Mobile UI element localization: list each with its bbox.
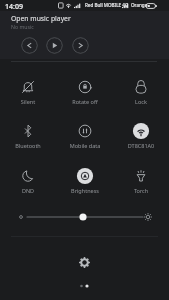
staticText: Orange xyxy=(131,2,148,8)
button[interactable]: Play xyxy=(46,37,63,54)
staticText: DT8C81A0 xyxy=(113,142,169,149)
staticText: Lock xyxy=(113,98,169,105)
staticText: Rotate off xyxy=(57,98,113,105)
staticText: Open music player xyxy=(11,14,71,23)
button[interactable]: Previous xyxy=(21,37,38,54)
staticText: No music xyxy=(11,23,34,30)
button[interactable]: Rotate off xyxy=(57,76,113,105)
staticText: DND xyxy=(0,187,56,194)
button[interactable]: Settings xyxy=(79,257,90,268)
staticText: Brightness xyxy=(57,187,113,194)
button[interactable]: Lock xyxy=(113,76,169,105)
button[interactable]: DND xyxy=(0,165,56,194)
button[interactable]: Mobile data xyxy=(57,120,113,149)
button[interactable]: Brightness slider xyxy=(0,211,169,223)
button[interactable]: DT8C81A0 xyxy=(113,120,169,149)
button[interactable]: Torch xyxy=(113,165,169,194)
staticText: Red Bull MOBILE 4G xyxy=(85,2,129,8)
staticText: Bluetooth xyxy=(0,142,56,149)
button[interactable]: Next xyxy=(72,37,89,54)
staticText: 14:09 xyxy=(5,2,23,12)
staticText: Mobile data xyxy=(57,142,113,149)
button[interactable]: Bluetooth xyxy=(0,120,56,149)
staticText: Torch xyxy=(113,187,169,194)
button[interactable]: Silent xyxy=(0,76,56,105)
staticText: Silent xyxy=(0,98,56,105)
button[interactable]: Brightness xyxy=(57,165,113,194)
